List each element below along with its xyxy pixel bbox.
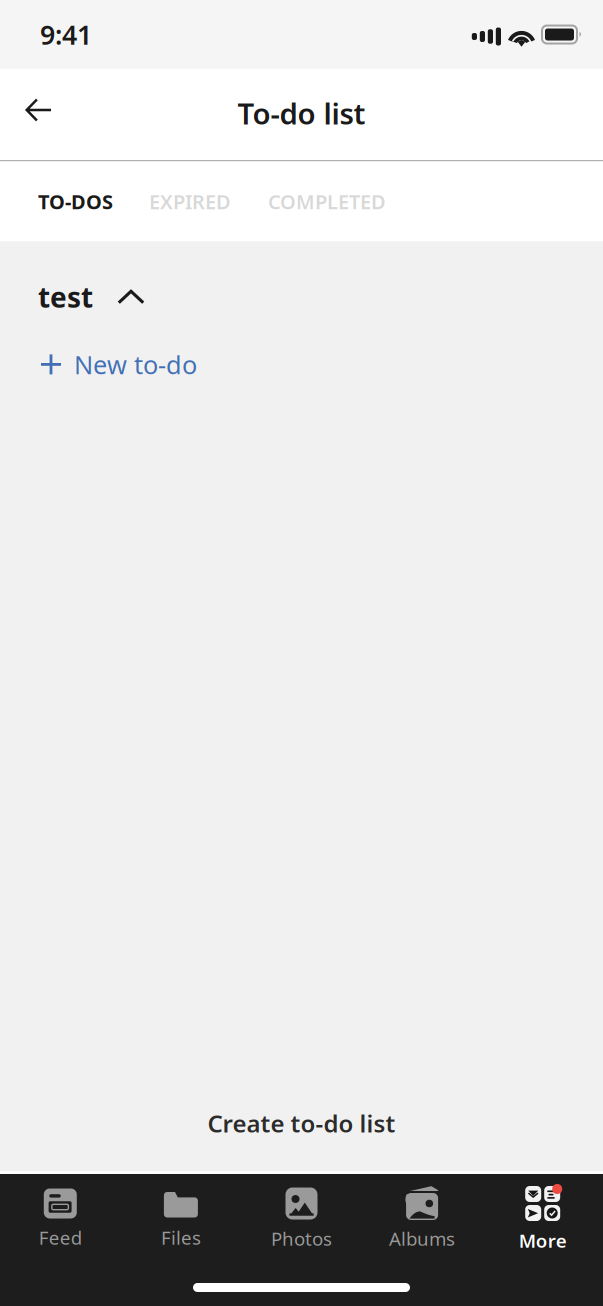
staticText: More	[519, 1228, 567, 1253]
button[interactable]: Files	[121, 1188, 241, 1250]
button[interactable]: Albums	[362, 1187, 482, 1251]
staticText: To-do list	[237, 93, 365, 132]
staticText: TO-DOS	[38, 188, 113, 215]
staticText: 9:41	[40, 17, 92, 52]
button[interactable]: Feed	[0, 1188, 121, 1250]
staticText: Albums	[389, 1226, 455, 1251]
staticText: Photos	[271, 1226, 332, 1251]
staticText: COMPLETED	[268, 188, 386, 215]
staticText: New to-do	[74, 348, 197, 381]
button[interactable]: Create to-do list	[0, 1093, 603, 1153]
staticText: EXPIRED	[149, 188, 231, 215]
button[interactable]: New to-do	[0, 328, 603, 391]
staticText: Files	[161, 1225, 201, 1250]
staticText: Feed	[39, 1225, 82, 1250]
button[interactable]: COMPLETED	[231, 176, 386, 227]
button[interactable]: More	[482, 1185, 603, 1253]
button[interactable]: Photos	[241, 1187, 362, 1251]
button[interactable]: test, collapse section	[0, 241, 603, 328]
button[interactable]: EXPIRED	[113, 176, 231, 227]
staticText: test	[38, 278, 93, 316]
staticText: Create to-do list	[207, 1107, 395, 1139]
button[interactable]: Back	[11, 82, 67, 138]
button[interactable]: TO-DOS	[38, 176, 113, 227]
